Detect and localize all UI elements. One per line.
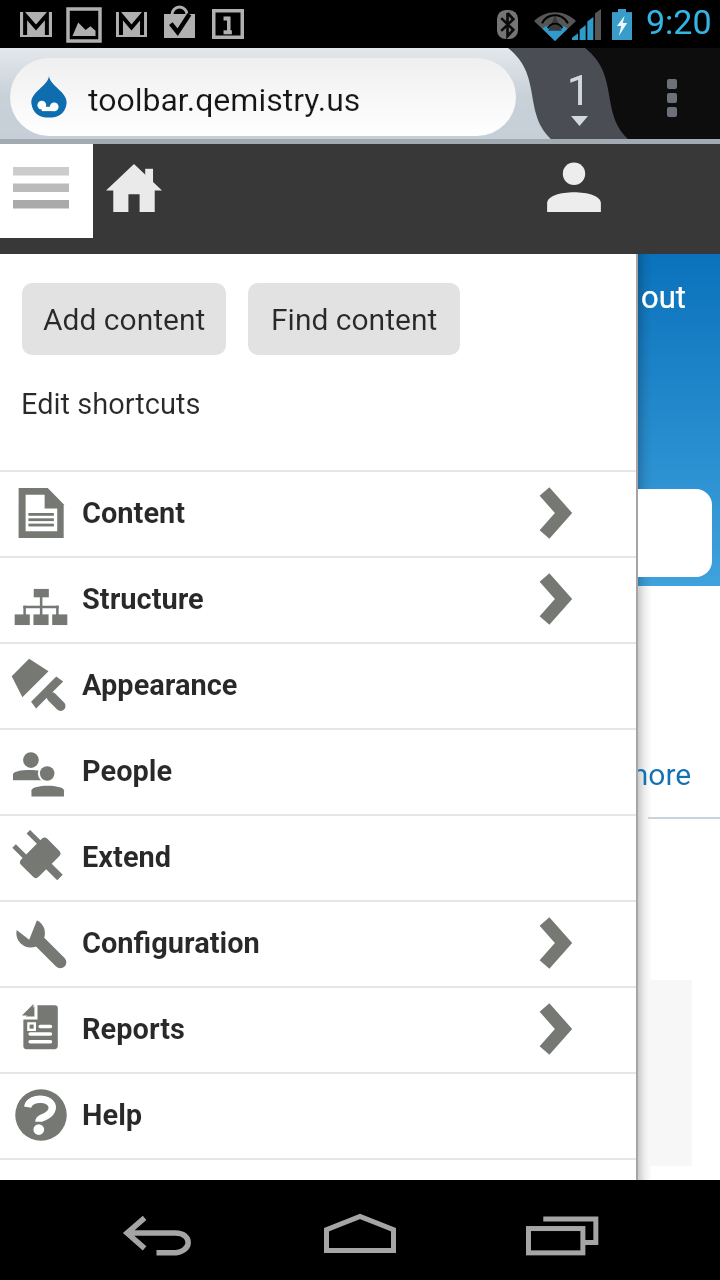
button[interactable]: People xyxy=(0,728,638,814)
staticText: Structure xyxy=(82,582,204,616)
staticText: Configuration xyxy=(82,926,260,960)
staticText: 9:20 xyxy=(646,2,712,42)
button[interactable]: Structure xyxy=(0,556,638,642)
staticText: Reports xyxy=(82,1012,185,1046)
staticText: Extend xyxy=(82,840,172,874)
staticText: toolbar.qemistry.us xyxy=(88,81,361,119)
staticText: more xyxy=(622,757,692,792)
staticText: Edit shortcuts xyxy=(21,387,201,421)
button[interactable]: Appearance xyxy=(0,642,638,728)
button[interactable]: Add content xyxy=(22,283,226,355)
button[interactable]: Find content xyxy=(248,283,460,355)
button[interactable]: toolbar.qemistry.us xyxy=(10,58,516,136)
staticText: Help xyxy=(82,1098,143,1132)
staticText: Add content xyxy=(43,302,206,337)
staticText: Appearance xyxy=(82,668,238,702)
button[interactable]: Extend xyxy=(0,814,638,900)
button[interactable]: More options xyxy=(655,70,689,124)
staticText: 1 xyxy=(567,66,591,115)
button[interactable]: Reports xyxy=(0,986,638,1072)
staticText: out xyxy=(641,279,686,315)
button[interactable]: Menu xyxy=(0,144,93,238)
button[interactable]: Configuration xyxy=(0,900,638,986)
button[interactable]: Tabs xyxy=(548,62,610,132)
button[interactable]: Content xyxy=(0,470,638,556)
button[interactable]: Account xyxy=(546,163,602,212)
staticText: People xyxy=(82,754,173,788)
button[interactable]: Back xyxy=(125,1216,195,1254)
staticText: Content xyxy=(82,496,186,530)
staticText: Find content xyxy=(271,302,438,337)
button[interactable]: Home xyxy=(324,1214,396,1253)
button[interactable]: Home xyxy=(106,164,162,212)
button[interactable]: Recents xyxy=(526,1216,598,1254)
button[interactable]: Help xyxy=(0,1072,638,1158)
